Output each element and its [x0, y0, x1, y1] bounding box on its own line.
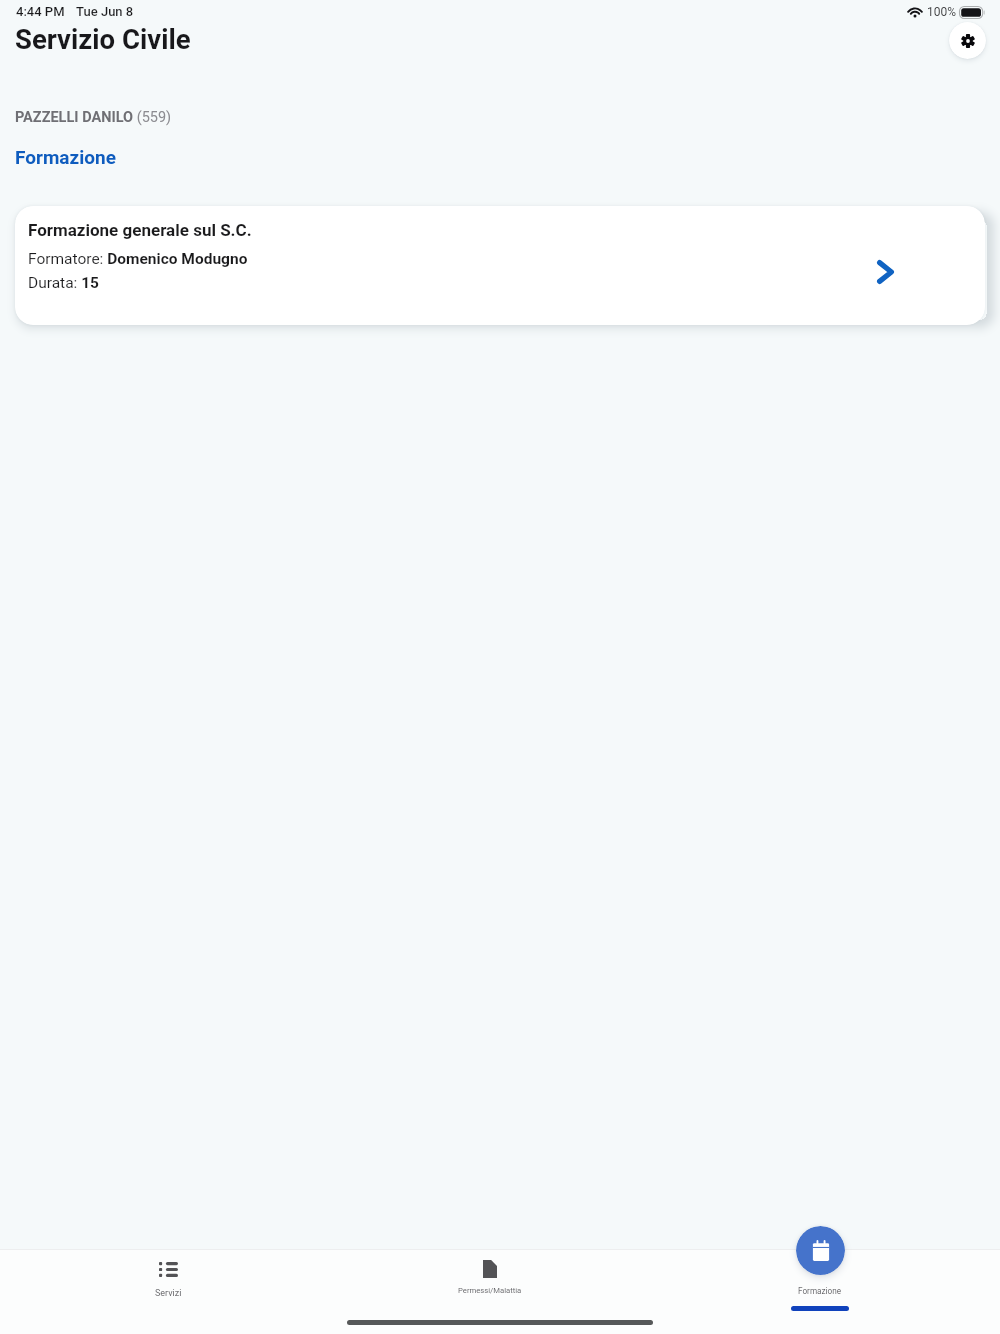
- staticText: Formatore: Domenico Modugno: [28, 250, 248, 268]
- staticText: Formazione generale sul S.C.: [28, 220, 252, 240]
- staticText: Tue Jun 8: [76, 4, 134, 19]
- staticText: 4:44 PM: [16, 4, 65, 19]
- button[interactable]: Permessi/Malattia: [330, 1250, 650, 1313]
- button[interactable]: Servizi: [8, 1250, 328, 1313]
- staticText: Servizi: [155, 1288, 182, 1299]
- staticText: Permessi/Malattia: [458, 1286, 522, 1295]
- staticText: Formazione: [15, 146, 116, 168]
- staticText: Servizio Civile: [15, 23, 191, 55]
- staticText: PAZZELLI DANILO (559): [15, 109, 172, 126]
- button[interactable]: Settings: [949, 22, 986, 59]
- staticText: 100%: [927, 5, 957, 19]
- button[interactable]: Formazione generale sul S.C.: [15, 206, 985, 325]
- button[interactable]: Formazione: [660, 1221, 980, 1313]
- staticText: Durata: 15: [28, 274, 99, 292]
- staticText: Formazione: [798, 1286, 842, 1296]
